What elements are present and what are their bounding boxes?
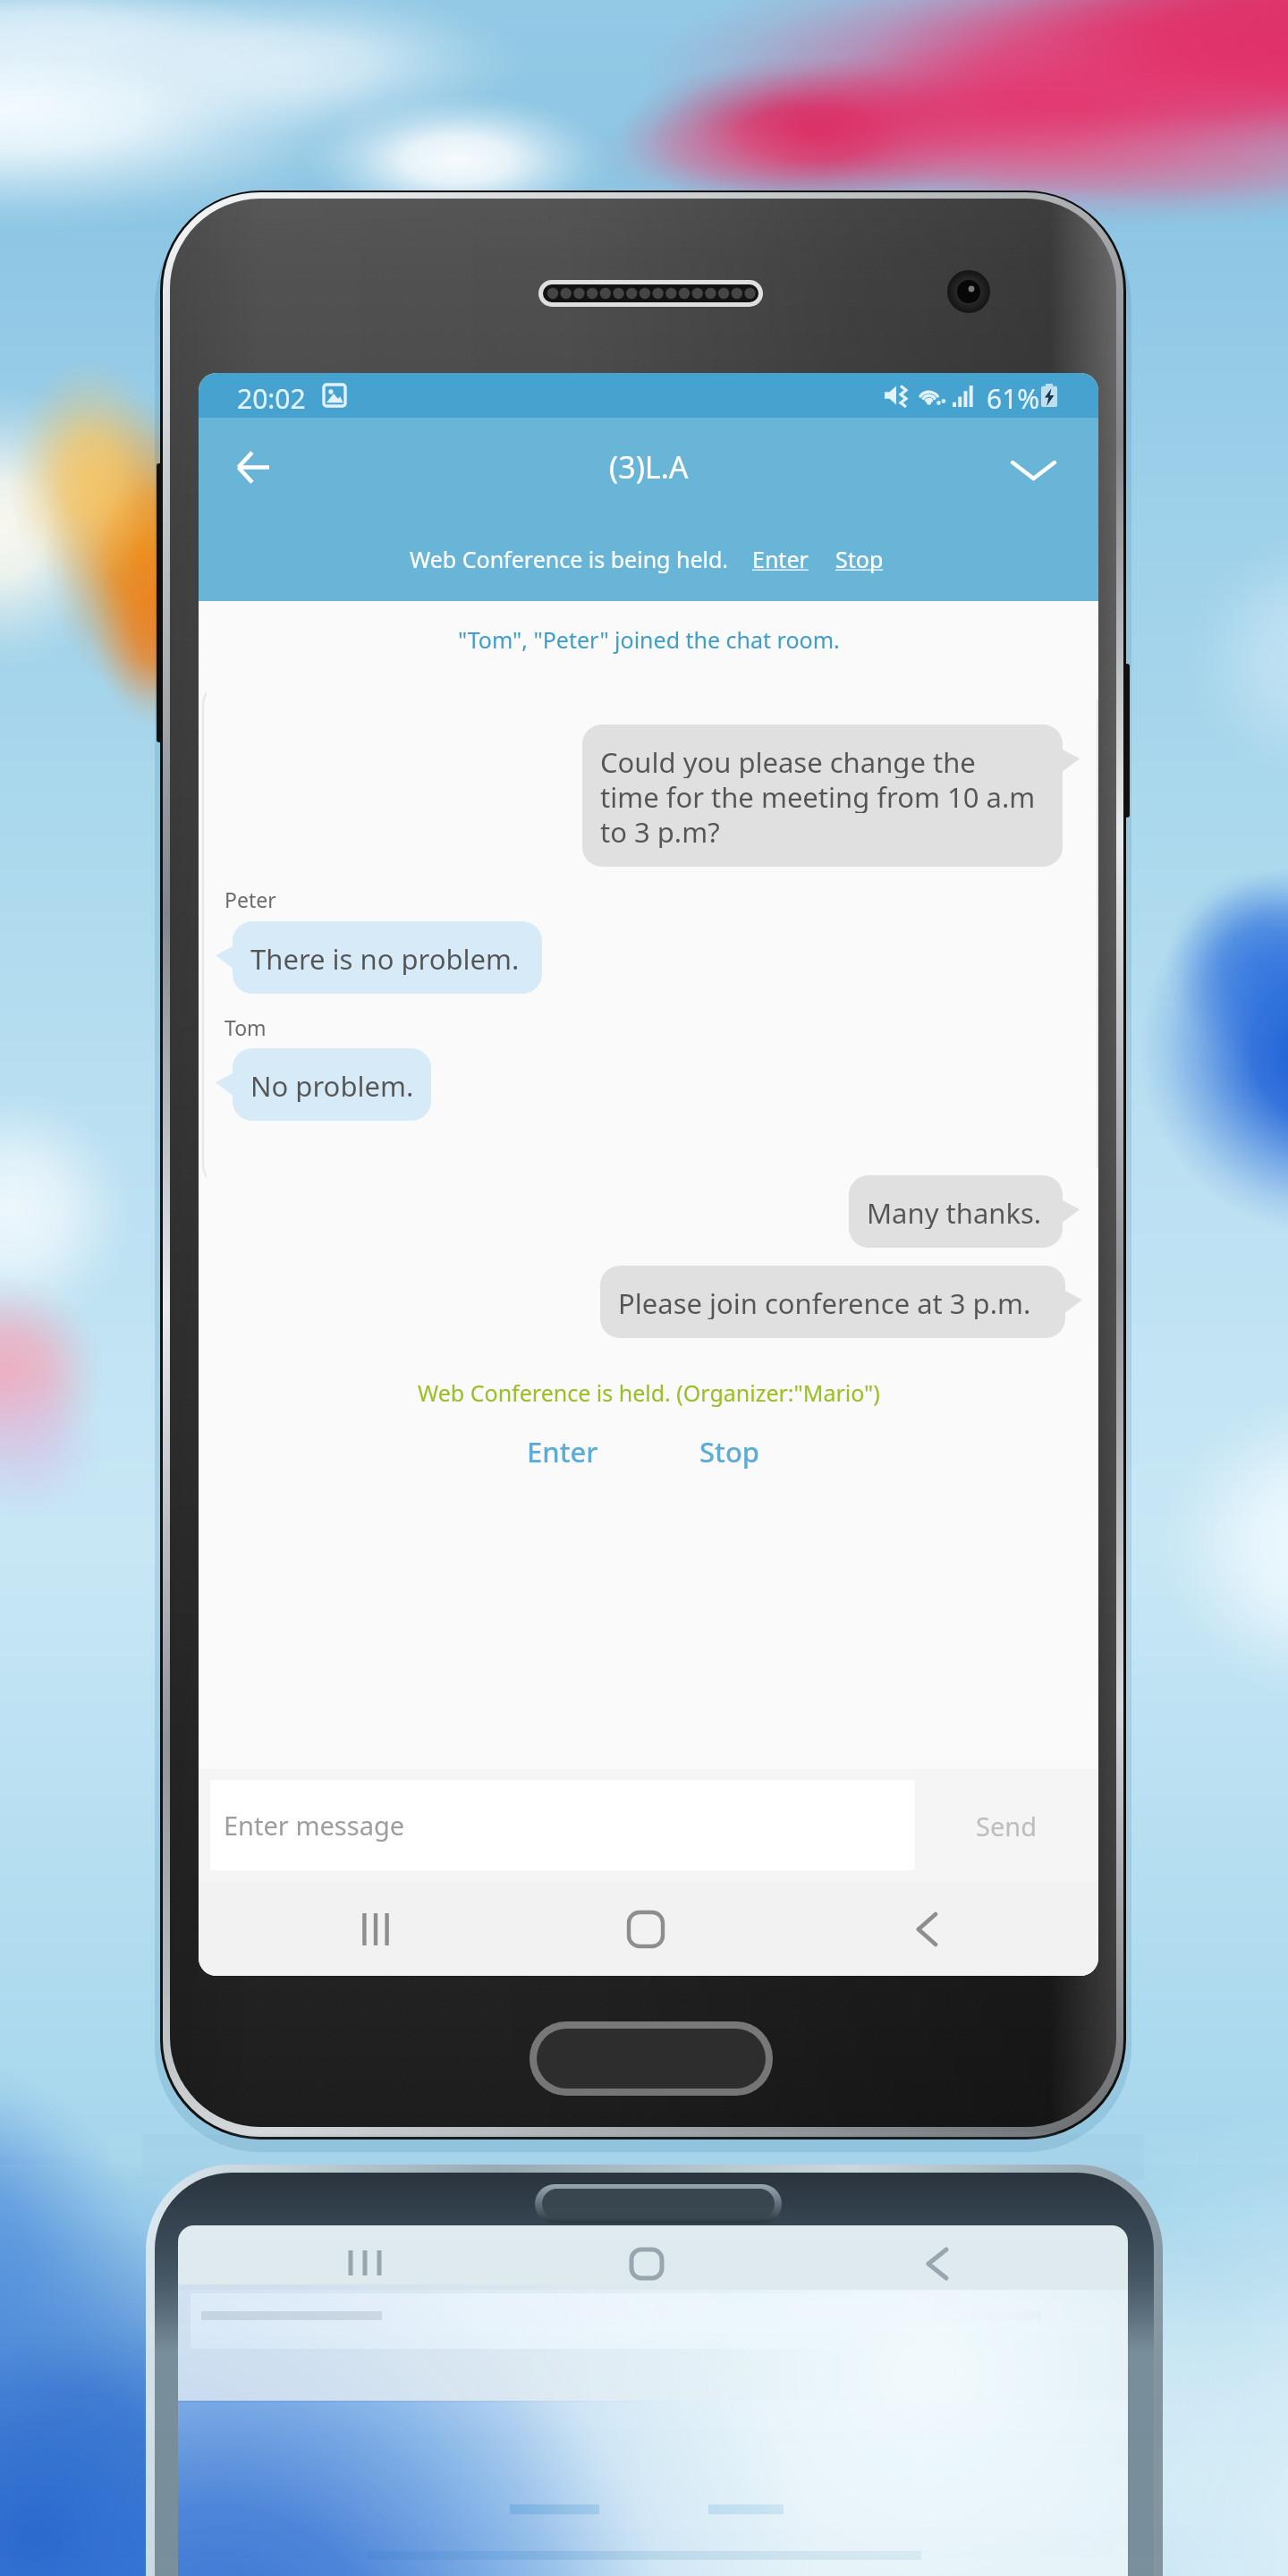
button[interactable]: Many thanks.: [849, 1175, 1063, 1248]
button[interactable]: Could you please change the: [582, 724, 1063, 867]
button[interactable]: Enter: [729, 538, 812, 580]
button[interactable]: Stop: [812, 538, 887, 580]
staticText: to 3 p.m?: [600, 813, 720, 848]
button[interactable]: No problem.: [233, 1048, 431, 1121]
staticText: Enter: [752, 544, 809, 574]
staticText: 61%: [987, 380, 1040, 417]
staticText: "Tom", "Peter" joined the chat room.: [458, 624, 840, 655]
staticText: Could you please change the: [600, 743, 976, 778]
staticText: Web Conference is being held.: [410, 544, 729, 574]
staticText: time for the meeting from 10 a.m: [600, 778, 1036, 813]
button[interactable]: Stop: [682, 1424, 778, 1479]
staticText: Tom: [225, 1013, 267, 1041]
button[interactable]: Back: [204, 418, 299, 516]
button[interactable]: Enter: [509, 1424, 616, 1479]
staticText: Enter message: [224, 1808, 405, 1843]
staticText: Enter: [527, 1433, 598, 1470]
button[interactable]: Send: [915, 1769, 1098, 1882]
button[interactable]: Recents: [319, 1882, 431, 1976]
staticText: 20:02: [237, 380, 306, 417]
staticText: (3)L.A: [609, 446, 689, 487]
staticText: Send: [976, 1809, 1038, 1843]
button[interactable]: Home: [589, 1882, 701, 1976]
staticText: Please join conference at 3 p.m.: [618, 1284, 1031, 1319]
button[interactable]: Enter message: [210, 1780, 915, 1870]
button[interactable]: Collapse: [986, 418, 1080, 516]
staticText: Stop: [835, 544, 884, 574]
button[interactable]: Back: [870, 1882, 982, 1976]
staticText: Web Conference is held. (Organizer:"Mari…: [418, 1377, 880, 1408]
staticText: Many thanks.: [867, 1194, 1042, 1229]
button[interactable]: There is no problem.: [233, 921, 542, 994]
staticText: Stop: [699, 1433, 760, 1470]
staticText: There is no problem.: [250, 940, 520, 975]
staticText: Peter: [225, 885, 276, 913]
button[interactable]: Please join conference at 3 p.m.: [600, 1266, 1065, 1338]
staticText: No problem.: [250, 1067, 414, 1102]
